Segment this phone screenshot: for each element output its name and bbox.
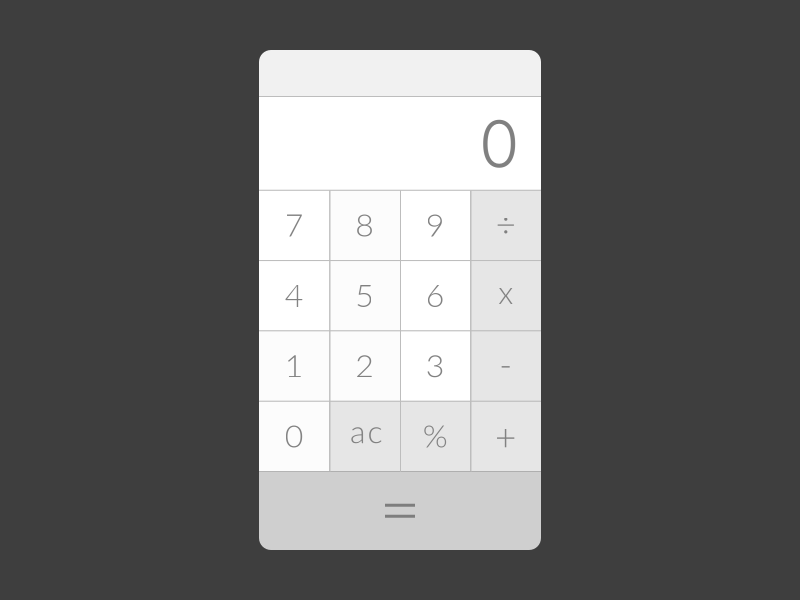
button[interactable]: 4 — [259, 260, 329, 331]
staticText: ÷ — [496, 203, 516, 245]
button[interactable]: Percent — [400, 401, 470, 471]
staticText: 0 — [479, 104, 519, 183]
staticText: 1 — [285, 346, 304, 384]
button[interactable]: 7 — [259, 190, 329, 260]
button[interactable]: 1 — [259, 331, 329, 401]
staticText: 6 — [426, 275, 445, 314]
staticText: - — [499, 343, 512, 385]
button[interactable]: Subtract — [470, 331, 541, 401]
button[interactable]: 9 — [400, 190, 470, 260]
staticText: 7 — [285, 205, 304, 243]
button[interactable]: 8 — [329, 190, 400, 260]
staticText: 9 — [426, 205, 445, 243]
button[interactable]: 6 — [400, 260, 470, 331]
button[interactable]: Add — [470, 401, 541, 471]
staticText: x — [498, 272, 513, 311]
button[interactable]: 3 — [400, 331, 470, 401]
staticText: + — [495, 414, 517, 458]
staticText: % — [423, 416, 448, 454]
staticText: 4 — [285, 275, 304, 314]
staticText: c — [367, 412, 382, 450]
staticText: 3 — [426, 346, 445, 384]
button[interactable]: 0 — [259, 401, 329, 471]
button[interactable]: 5 — [329, 260, 400, 331]
button[interactable]: Equals — [259, 471, 541, 550]
staticText: 0 — [285, 416, 304, 454]
button[interactable]: Multiply — [470, 260, 541, 331]
button[interactable]: All clear — [329, 401, 400, 471]
staticText: 2 — [355, 346, 374, 384]
button[interactable]: Divide — [470, 190, 541, 260]
staticText: 5 — [355, 275, 374, 314]
staticText: a — [350, 412, 365, 450]
button[interactable]: 2 — [329, 331, 400, 401]
staticText: 8 — [355, 205, 374, 243]
